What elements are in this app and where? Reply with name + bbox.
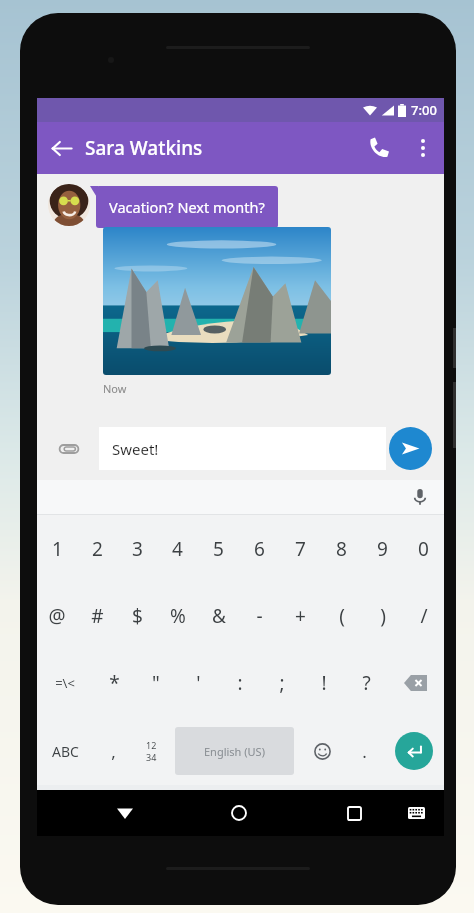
staticText: , xyxy=(111,740,116,763)
button[interactable]: + xyxy=(280,582,321,649)
staticText: # xyxy=(91,603,104,629)
staticText: ' xyxy=(196,670,201,696)
staticText: 12 xyxy=(146,739,157,751)
staticText: 6 xyxy=(254,536,265,562)
button[interactable]: Send xyxy=(389,427,432,470)
button[interactable]: Emoji xyxy=(299,717,345,785)
button[interactable]: Call xyxy=(356,125,402,171)
button[interactable]: =\< xyxy=(37,649,93,717)
button[interactable]: More options xyxy=(402,127,444,169)
button[interactable]: : xyxy=(219,649,261,717)
button[interactable]: ' xyxy=(177,649,219,717)
staticText: English (US) xyxy=(204,744,265,759)
staticText: * xyxy=(109,670,120,696)
staticText: 3 xyxy=(132,536,143,562)
button[interactable]: ) xyxy=(362,582,403,649)
staticText: Now xyxy=(103,381,127,396)
button[interactable]: 7 xyxy=(280,515,321,582)
button[interactable]: Backspace xyxy=(387,649,444,717)
staticText: 0 xyxy=(418,536,429,562)
button[interactable]: @ xyxy=(37,582,77,649)
button[interactable]: Attach xyxy=(53,433,85,465)
button[interactable]: Sweet! xyxy=(99,427,386,470)
button[interactable]: 2 xyxy=(77,515,117,582)
staticText: 7 xyxy=(295,536,306,562)
button[interactable]: Back xyxy=(37,124,85,172)
staticText: 2 xyxy=(92,536,103,562)
staticText: 1 xyxy=(52,536,63,562)
button[interactable]: & xyxy=(198,582,239,649)
button[interactable]: Switch keyboard xyxy=(396,793,436,833)
staticText: ; xyxy=(279,670,285,696)
staticText: " xyxy=(152,670,160,696)
staticText: Sara Watkins xyxy=(85,135,356,161)
button[interactable]: " xyxy=(135,649,177,717)
staticText: + xyxy=(295,603,306,629)
button[interactable]: * xyxy=(93,649,135,717)
button[interactable]: 0 xyxy=(403,515,444,582)
button[interactable]: . xyxy=(345,717,383,785)
button[interactable]: / xyxy=(403,582,444,649)
staticText: ? xyxy=(362,670,371,696)
button[interactable]: Sara Watkins avatar xyxy=(48,184,90,226)
staticText: ! xyxy=(321,670,327,696)
button[interactable]: 3 xyxy=(117,515,157,582)
staticText: 8 xyxy=(336,536,347,562)
staticText: 9 xyxy=(377,536,388,562)
staticText: 7:00 xyxy=(411,101,437,119)
staticText: % xyxy=(170,603,186,629)
staticText: Vacation? Next month? xyxy=(109,197,265,217)
staticText: ) xyxy=(380,603,386,629)
staticText: 34 xyxy=(146,751,157,763)
staticText: Sweet! xyxy=(112,439,159,459)
staticText: ABC xyxy=(52,742,79,761)
button[interactable]: Voice input xyxy=(406,483,434,511)
button[interactable]: % xyxy=(157,582,198,649)
button[interactable]: Numbers xyxy=(132,717,170,785)
staticText: & xyxy=(212,603,226,629)
button[interactable]: ; xyxy=(261,649,303,717)
staticText: =\< xyxy=(55,674,75,692)
button[interactable]: # xyxy=(77,582,117,649)
button[interactable]: 4 xyxy=(157,515,198,582)
button[interactable]: ! xyxy=(303,649,345,717)
staticText: $ xyxy=(132,603,143,629)
staticText: / xyxy=(420,603,428,629)
staticText: 4 xyxy=(172,536,183,562)
button[interactable]: ABC xyxy=(37,717,94,785)
button[interactable]: 8 xyxy=(321,515,362,582)
button[interactable]: , xyxy=(94,717,132,785)
button[interactable]: Hide keyboard xyxy=(103,791,147,835)
button[interactable]: ? xyxy=(345,649,387,717)
button[interactable]: Vacation? Next month? xyxy=(96,186,278,228)
staticText: . xyxy=(362,740,367,763)
button[interactable]: 9 xyxy=(362,515,403,582)
button[interactable]: ( xyxy=(321,582,362,649)
staticText: : xyxy=(237,670,243,696)
button[interactable]: 1 xyxy=(37,515,77,582)
staticText: - xyxy=(256,603,263,629)
button[interactable]: Recent apps xyxy=(332,791,376,835)
button[interactable]: English (US) xyxy=(175,727,294,775)
button[interactable]: Enter xyxy=(395,732,433,770)
staticText: 5 xyxy=(213,536,224,562)
staticText: ( xyxy=(339,603,345,629)
button[interactable]: Photo of beach rocks xyxy=(103,227,331,375)
button[interactable]: - xyxy=(239,582,280,649)
button[interactable]: 6 xyxy=(239,515,280,582)
button[interactable]: Home xyxy=(217,791,261,835)
button[interactable]: $ xyxy=(117,582,157,649)
button[interactable]: 5 xyxy=(198,515,239,582)
staticText: @ xyxy=(48,603,66,629)
